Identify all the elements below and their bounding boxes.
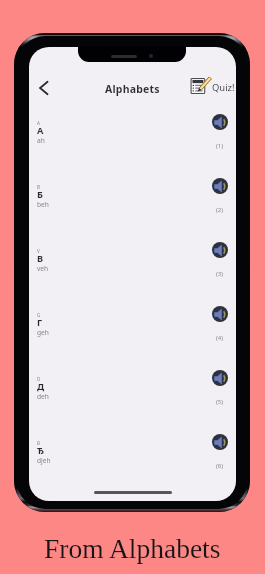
staticText: deh	[37, 392, 49, 401]
button[interactable]: B	[29, 169, 236, 233]
staticText: Д	[37, 380, 45, 393]
button[interactable]: Play pronunciation	[212, 434, 228, 450]
staticText: (5)	[216, 398, 224, 406]
staticText: ah	[37, 136, 45, 145]
staticText: Alphabets	[105, 82, 160, 96]
button[interactable]: D	[29, 361, 236, 425]
button[interactable]: Play pronunciation	[212, 370, 228, 386]
button[interactable]: Play pronunciation	[212, 306, 228, 322]
button[interactable]: Play pronunciation	[212, 178, 228, 194]
staticText: Г	[37, 316, 43, 329]
staticText: В	[37, 252, 44, 265]
staticText: V	[37, 248, 40, 254]
staticText: Б	[37, 188, 43, 201]
staticText: (4)	[216, 334, 224, 342]
staticText: А	[37, 124, 44, 137]
staticText: Ð	[37, 440, 41, 446]
button[interactable]: A	[29, 105, 236, 169]
staticText: G	[37, 312, 41, 318]
staticText: beh	[37, 200, 49, 209]
button[interactable]: G	[29, 297, 236, 361]
staticText: A	[37, 120, 40, 126]
staticText: Ђ	[37, 444, 45, 457]
staticText: From Alphabets	[44, 533, 221, 563]
button[interactable]: Quiz!	[188, 75, 235, 97]
button[interactable]: V	[29, 233, 236, 297]
staticText: B	[37, 184, 40, 190]
button[interactable]: Play pronunciation	[212, 242, 228, 258]
staticText: D	[37, 376, 41, 382]
button[interactable]: Ð	[29, 425, 236, 489]
staticText: djeh	[37, 456, 51, 465]
button[interactable]: Play pronunciation	[212, 114, 228, 130]
staticText: veh	[37, 264, 49, 273]
button[interactable]: Back	[29, 74, 57, 102]
staticText: (6)	[216, 462, 224, 470]
staticText: geh	[37, 328, 49, 337]
staticText: Quiz!	[212, 81, 235, 94]
staticText: (1)	[216, 142, 224, 150]
staticText: (2)	[216, 206, 224, 214]
staticText: (3)	[216, 270, 224, 278]
